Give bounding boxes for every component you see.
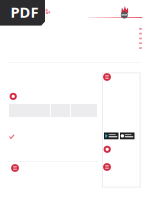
button[interactable]: Comment marker [0, 0, 149, 198]
button[interactable]: Annotation marker [0, 0, 149, 198]
button[interactable]: Comment marker [0, 0, 149, 198]
button[interactable]: PDF [0, 0, 45, 26]
button[interactable]: Download on the App Store [0, 0, 149, 198]
button[interactable]: Get it on Google Play [0, 0, 149, 198]
button[interactable]: Annotation marker [0, 0, 149, 198]
button[interactable]: Comment marker [0, 0, 149, 198]
staticText: PDF [10, 2, 38, 22]
